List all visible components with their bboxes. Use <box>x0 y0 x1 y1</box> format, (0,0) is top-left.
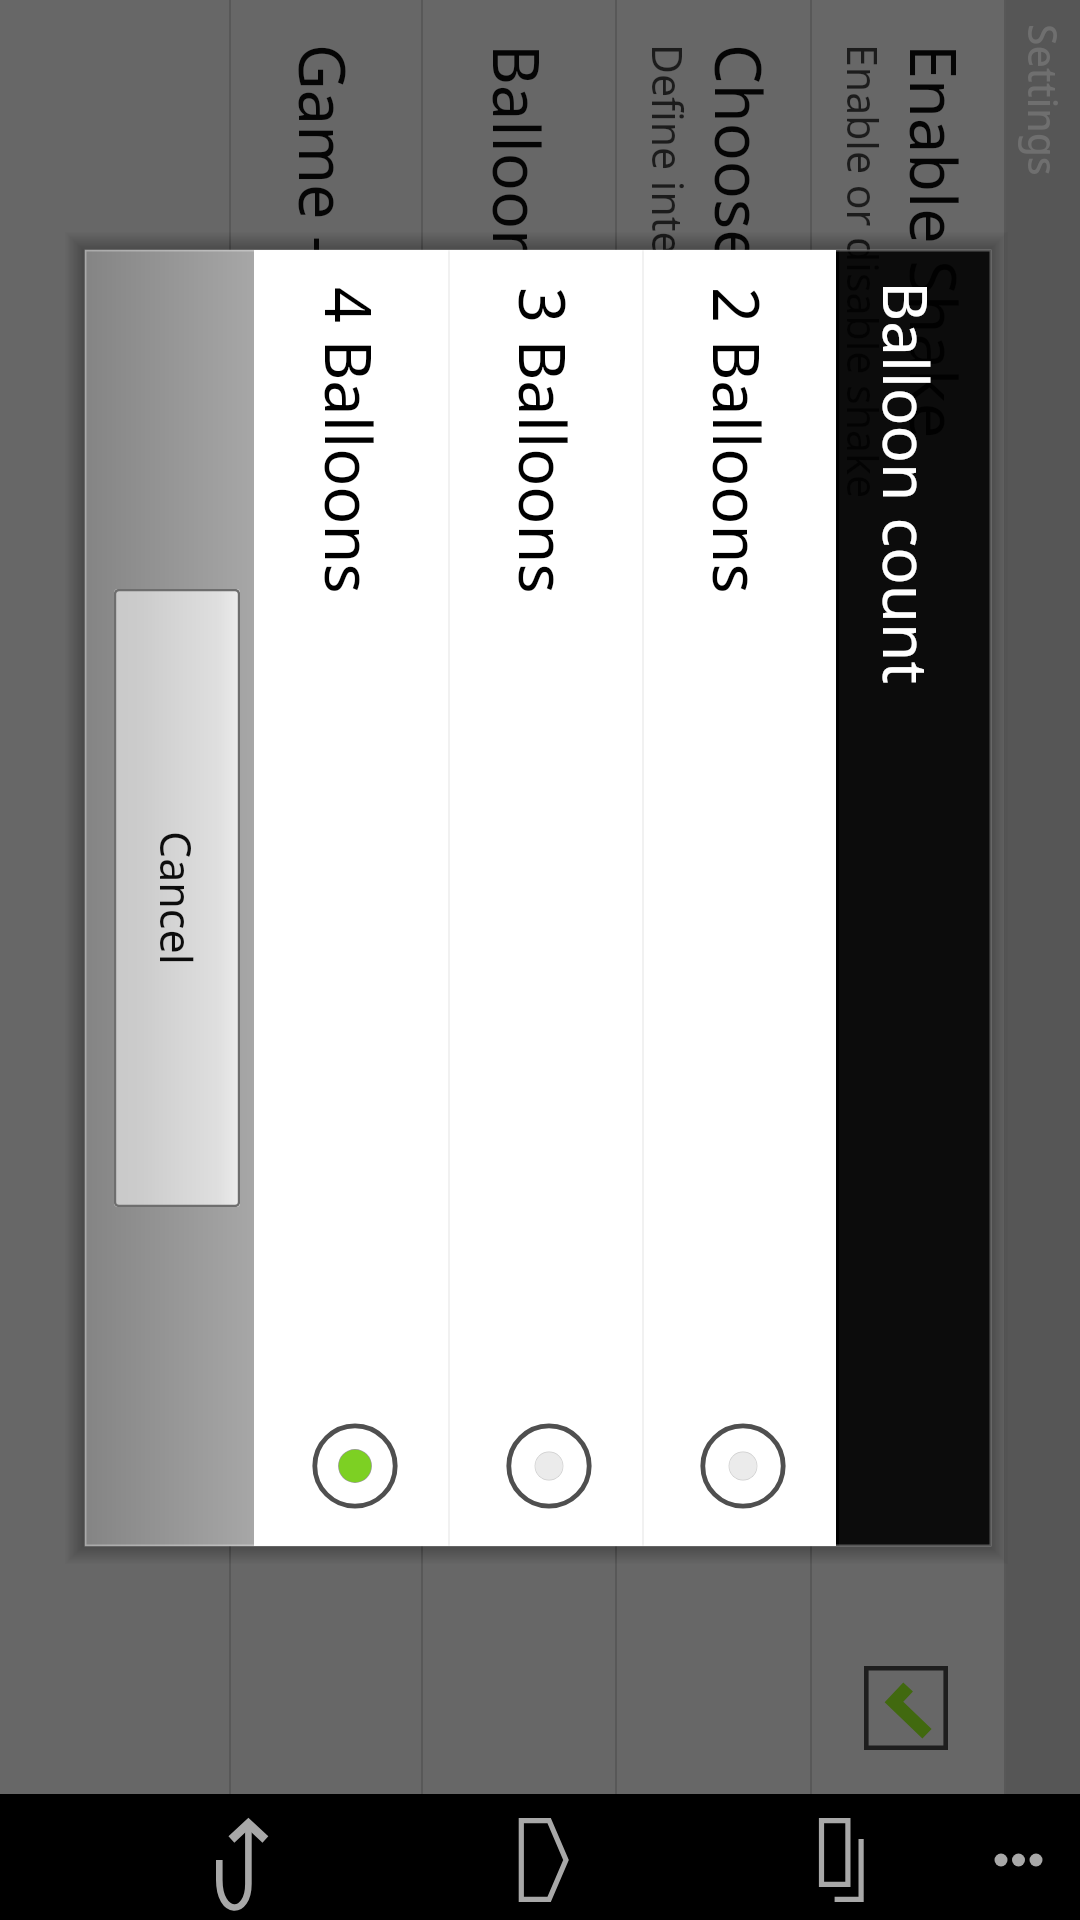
staticText: 3 Balloons <box>500 287 586 594</box>
button[interactable]: Recent apps <box>800 1806 880 1910</box>
staticText: Enable Shake <box>891 44 977 439</box>
button[interactable]: 3 Balloons <box>448 250 642 1546</box>
button[interactable]: Enable Shake <box>812 0 1006 1794</box>
staticText: Choose sensitivity <box>696 44 782 575</box>
button[interactable]: Home <box>500 1806 580 1910</box>
button[interactable]: Choose sensitivity <box>617 0 812 1794</box>
button[interactable]: Back <box>195 1806 285 1916</box>
staticText: Cancel <box>147 831 206 965</box>
staticText: Game - Pop the balloons <box>280 44 366 770</box>
button[interactable]: Enable Shake <box>864 1666 948 1750</box>
button[interactable]: Balloon count <box>423 0 617 1794</box>
staticText: Enable or disable shake <box>835 44 891 499</box>
staticText: 4 Balloons <box>306 287 392 594</box>
button[interactable]: Cancel <box>114 589 240 1207</box>
staticText: Balloon count <box>865 281 949 684</box>
button[interactable]: 2 Balloons <box>642 250 836 1546</box>
staticText: Define intensity of the shake <box>640 44 696 594</box>
button[interactable]: Game - Pop the balloons <box>229 0 423 1794</box>
button[interactable]: 4 Balloons <box>254 250 448 1546</box>
button[interactable]: More options <box>970 1830 1066 1884</box>
staticText: Balloon count <box>474 44 560 454</box>
staticText: 2 Balloons <box>694 287 780 594</box>
staticText: Settings <box>1017 24 1070 176</box>
